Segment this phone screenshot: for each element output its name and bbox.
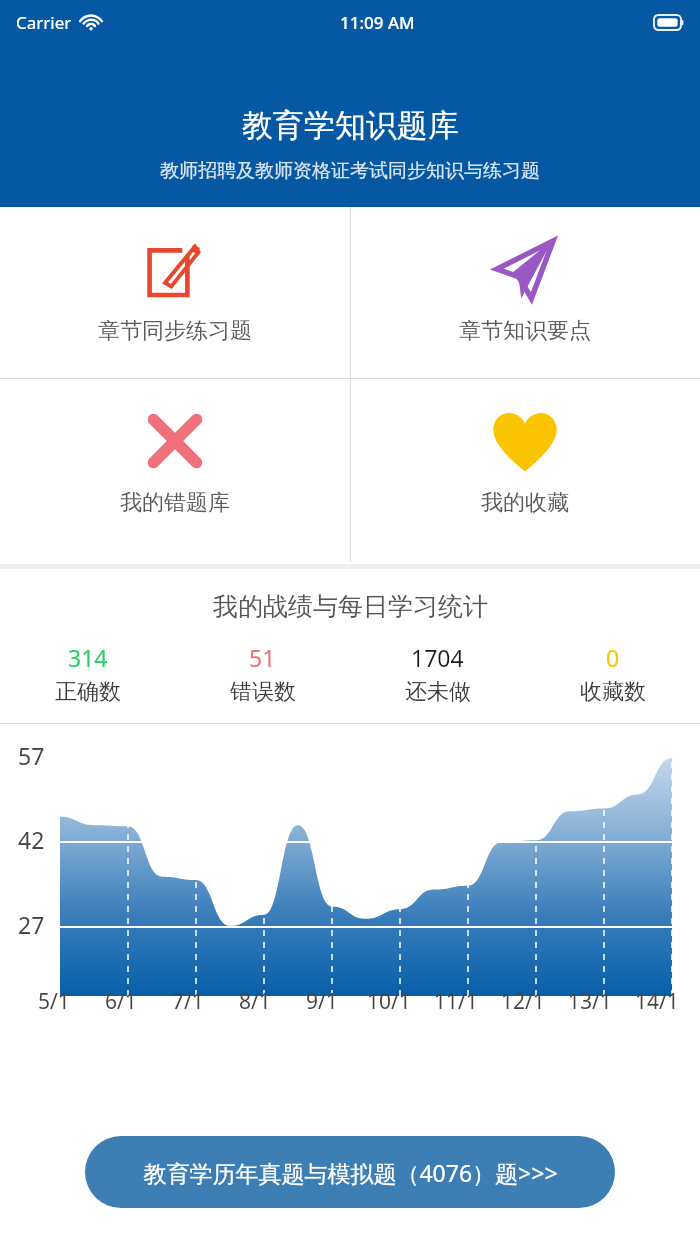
- button[interactable]: 51: [175, 642, 350, 706]
- button[interactable]: 1704: [350, 642, 525, 706]
- staticText: Carrier: [16, 11, 72, 34]
- staticText: 收藏数: [580, 678, 646, 706]
- staticText: 章节同步练习题: [98, 317, 252, 345]
- staticText: 11/1: [434, 987, 478, 1016]
- button[interactable]: 我的错题库: [0, 379, 350, 564]
- staticText: 7/1: [172, 987, 204, 1016]
- button[interactable]: 教育学历年真题与模拟题（4076）题>>>: [85, 1136, 615, 1208]
- staticText: 我的收藏: [481, 489, 569, 517]
- staticText: 1704: [411, 642, 464, 673]
- staticText: 27: [18, 909, 45, 940]
- staticText: 14/1: [635, 987, 679, 1016]
- staticText: 我的错题库: [120, 489, 230, 517]
- staticText: 10/1: [367, 987, 411, 1016]
- staticText: 13/1: [568, 987, 612, 1016]
- staticText: 错误数: [230, 678, 296, 706]
- staticText: 11:09 AM: [340, 11, 415, 34]
- staticText: 教育学历年真题与模拟题（4076）题>>>: [143, 1157, 558, 1188]
- staticText: 还未做: [405, 678, 471, 706]
- button[interactable]: 314: [0, 642, 175, 706]
- staticText: 42: [18, 824, 45, 855]
- staticText: 9/1: [306, 987, 338, 1016]
- staticText: 8/1: [239, 987, 271, 1016]
- staticText: 0: [606, 642, 620, 673]
- staticText: 57: [18, 740, 45, 771]
- staticText: 教师招聘及教师资格证考试同步知识与练习题: [160, 159, 540, 183]
- staticText: 正确数: [55, 678, 121, 706]
- button[interactable]: 我的收藏: [350, 379, 700, 564]
- staticText: 314: [68, 642, 108, 673]
- staticText: 5/1: [38, 987, 70, 1016]
- staticText: 教育学知识题库: [242, 106, 459, 145]
- button[interactable]: 章节同步练习题: [0, 207, 350, 378]
- button[interactable]: 章节知识要点: [350, 207, 700, 378]
- staticText: 51: [249, 642, 276, 673]
- staticText: 12/1: [501, 987, 545, 1016]
- staticText: 我的战绩与每日学习统计: [213, 591, 488, 622]
- staticText: 章节知识要点: [459, 317, 591, 345]
- button[interactable]: 0: [525, 642, 700, 706]
- staticText: 6/1: [105, 987, 137, 1016]
